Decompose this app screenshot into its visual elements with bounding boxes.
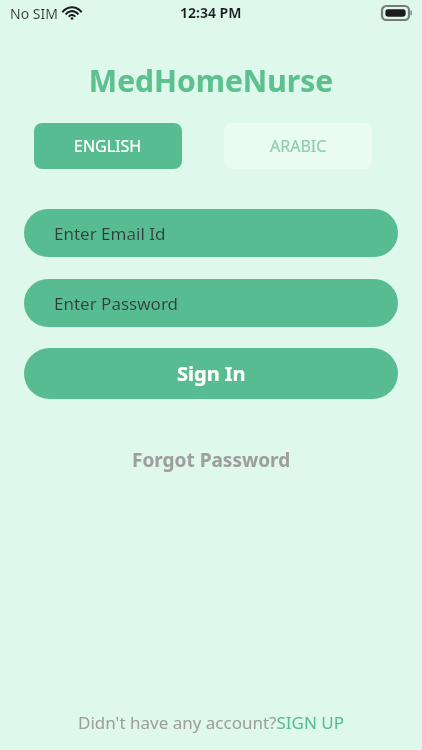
other: Wi-Fi (64, 7, 80, 20)
button[interactable]: Sign In (24, 348, 398, 399)
button[interactable]: ARABIC (224, 123, 372, 169)
staticText: MedHomeNurse (0, 60, 422, 101)
button[interactable]: Enter Email Id (24, 209, 398, 257)
other: Battery (382, 6, 412, 20)
staticText: Didn't have any account?SIGN UP (78, 711, 344, 734)
staticText: ARABIC (270, 135, 327, 157)
staticText: Sign In (177, 360, 246, 387)
button[interactable]: Enter Password (24, 279, 398, 327)
button[interactable]: Didn't have any account?SIGN UP (0, 711, 422, 734)
button[interactable]: ENGLISH (34, 123, 182, 169)
staticText: Enter Password (54, 292, 179, 315)
staticText: Forgot Password (132, 447, 291, 473)
button[interactable]: Forgot Password (0, 441, 422, 479)
staticText: 12:34 PM (180, 3, 242, 22)
staticText: No SIM (10, 4, 58, 23)
staticText: ENGLISH (74, 135, 142, 157)
staticText: Enter Email Id (54, 222, 166, 245)
